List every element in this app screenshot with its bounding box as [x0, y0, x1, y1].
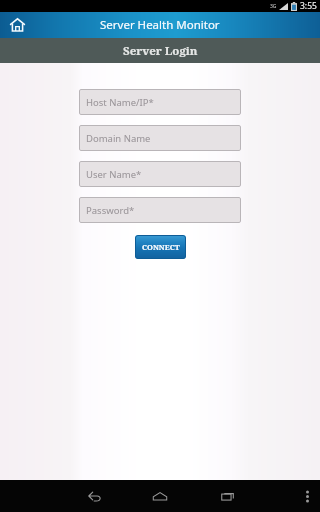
button[interactable]: User Name*: [79, 161, 241, 187]
staticText: Domain Name: [86, 132, 151, 145]
staticText: Host Name/IP*: [86, 96, 154, 109]
button[interactable]: More options: [294, 480, 320, 512]
button[interactable]: Recent apps: [210, 480, 246, 512]
button[interactable]: Domain Name: [79, 125, 241, 151]
button[interactable]: CONNECT: [135, 235, 186, 259]
button[interactable]: Home: [0, 12, 34, 38]
staticText: Server Health Monitor: [100, 17, 220, 33]
staticText: 3G: [270, 3, 277, 10]
button[interactable]: Home: [142, 480, 178, 512]
staticText: 3:55: [300, 0, 317, 12]
staticText: Server Login: [123, 43, 198, 59]
button[interactable]: Password*: [79, 197, 241, 223]
staticText: Password*: [86, 204, 135, 217]
staticText: CONNECT: [142, 242, 180, 252]
button[interactable]: Host Name/IP*: [79, 89, 241, 115]
button[interactable]: Back: [76, 480, 112, 512]
staticText: User Name*: [86, 168, 142, 181]
